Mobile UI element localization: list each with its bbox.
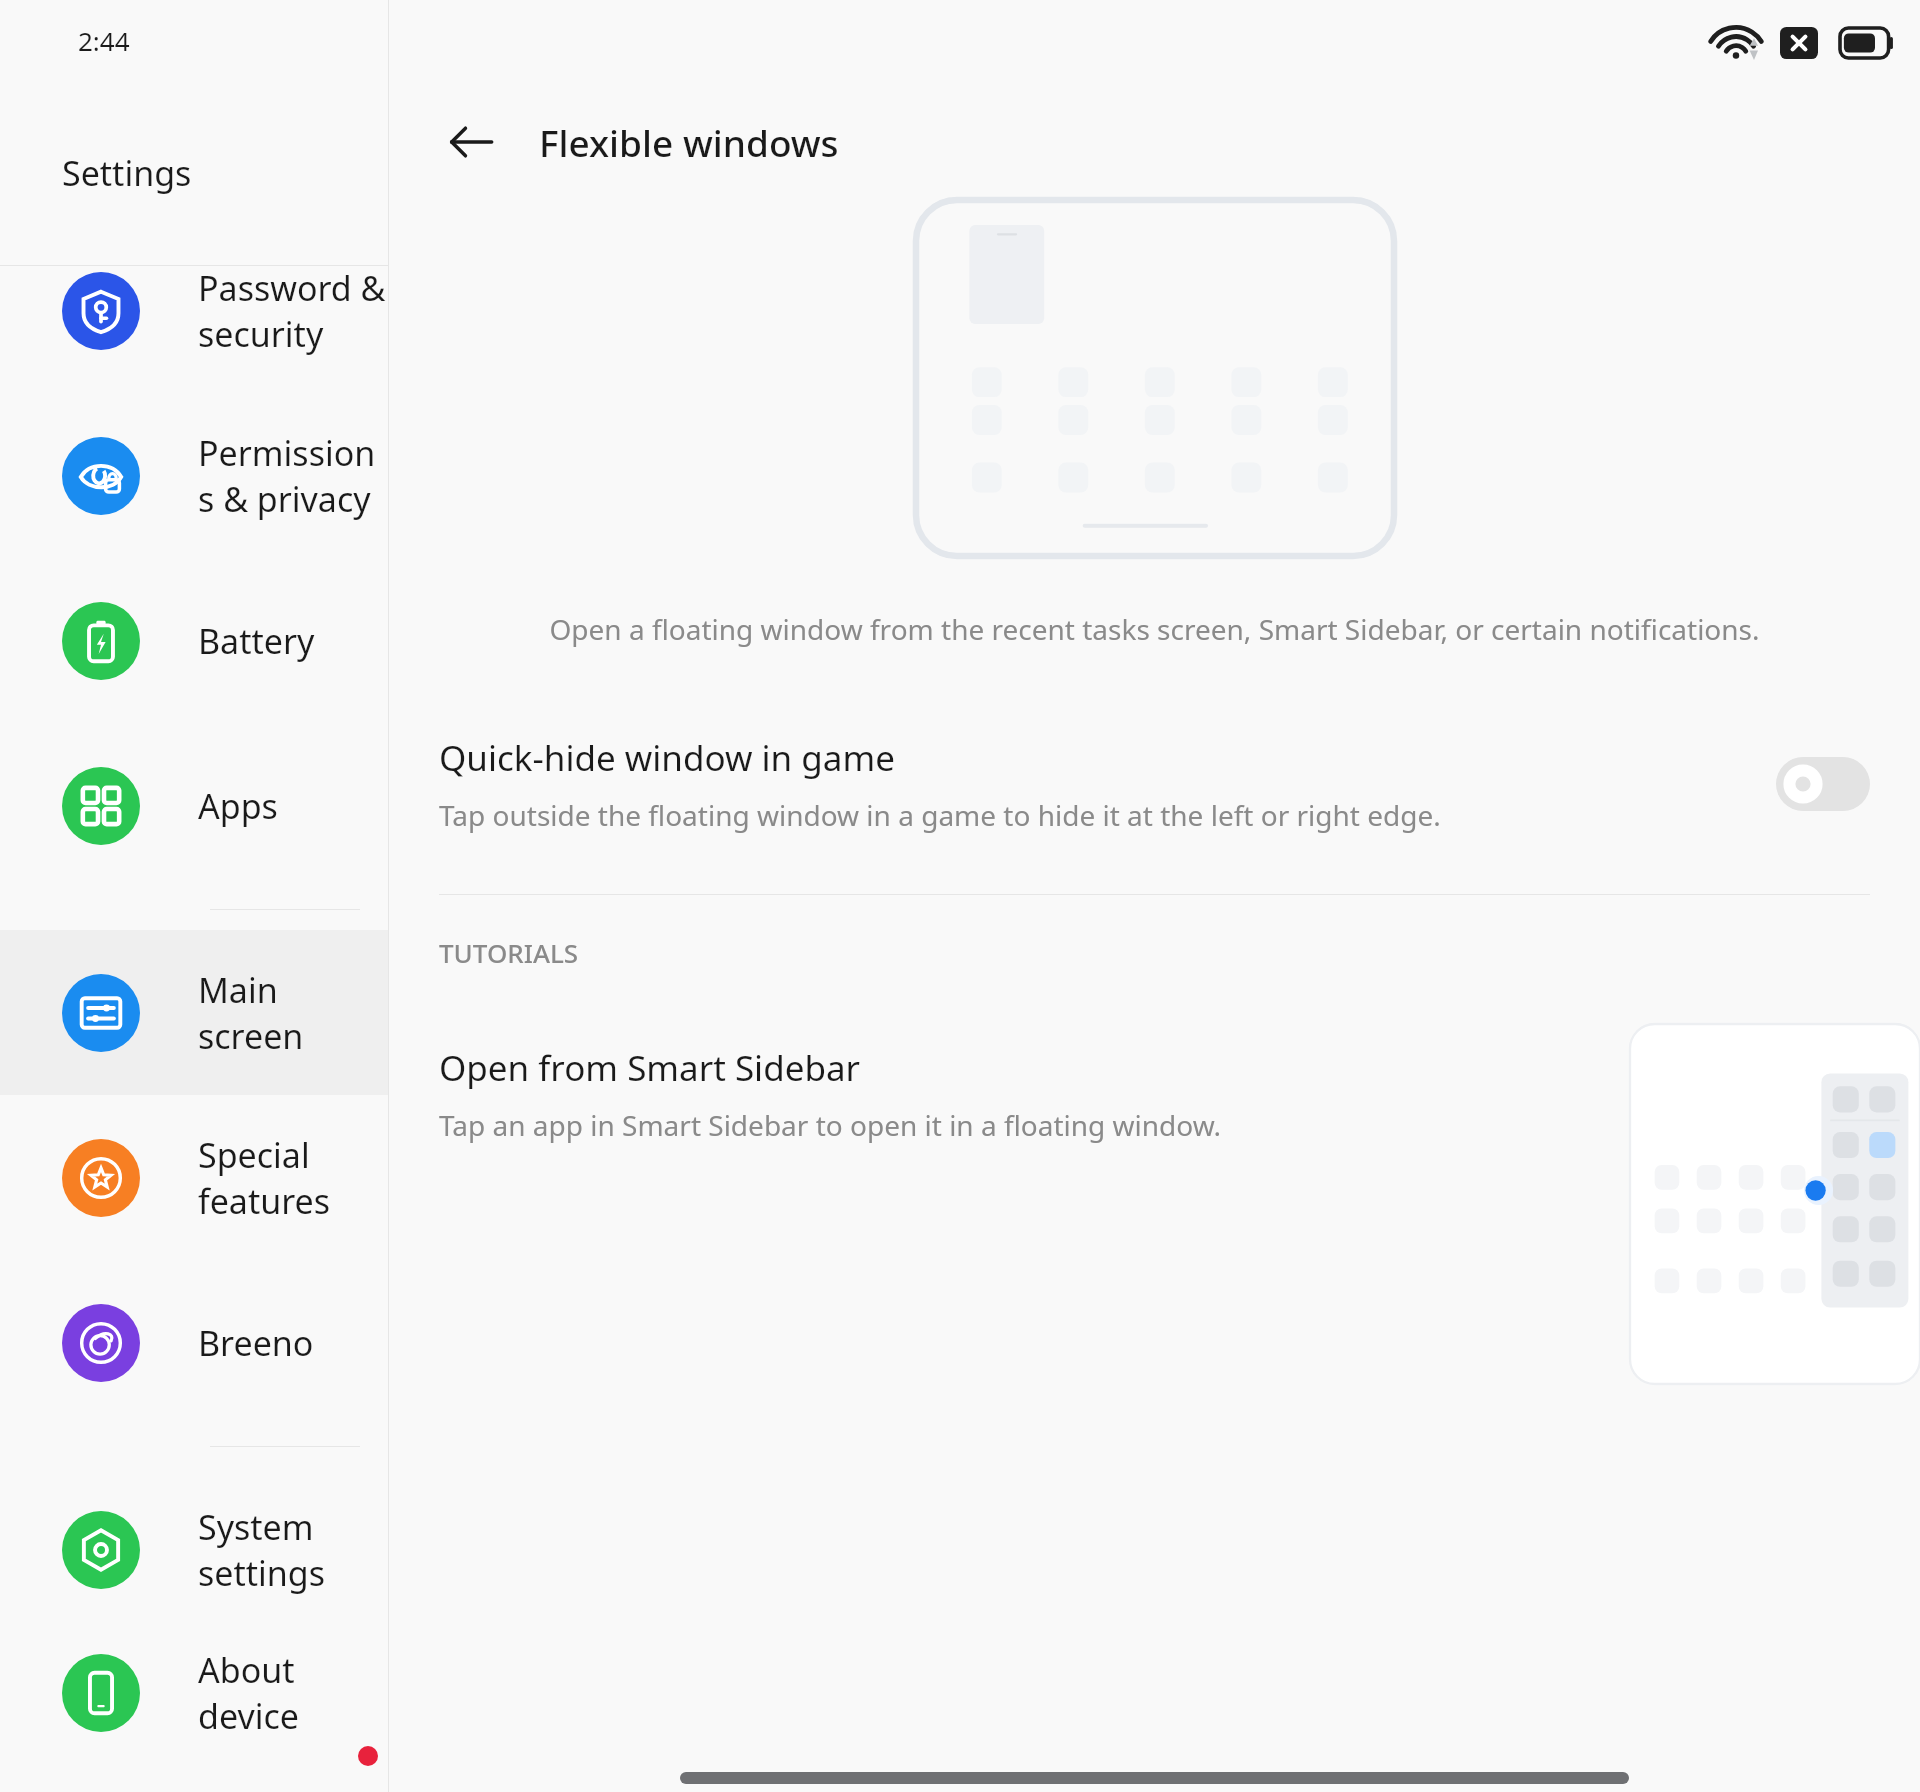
staticText: System settings (198, 1504, 388, 1596)
staticText: TUTORIALS (439, 935, 579, 970)
button[interactable]: Apps (0, 723, 388, 888)
button[interactable]: Quick-hide window in game toggle (1776, 757, 1870, 811)
staticText: Open a floating window from the recent t… (443, 610, 1866, 648)
staticText: About device (198, 1647, 388, 1739)
staticText: Flexible windows (539, 117, 839, 167)
button[interactable]: Password & security (0, 228, 388, 393)
staticText: Tap an app in Smart Sidebar to open it i… (439, 1106, 1222, 1144)
button[interactable]: Open from Smart Sidebar (389, 1024, 1920, 1324)
button[interactable]: Permissions & privacy (0, 393, 388, 558)
staticText: Main screen (198, 967, 388, 1059)
staticText: Special features (198, 1132, 388, 1224)
staticText: Open from Smart Sidebar (439, 1044, 861, 1092)
staticText: Password & security (198, 265, 388, 357)
button[interactable]: Special features (0, 1095, 388, 1260)
staticText: Apps (198, 783, 278, 829)
staticText: 2:44 (78, 23, 130, 58)
staticText: Quick-hide window in game (439, 734, 895, 782)
button[interactable]: Battery (0, 558, 388, 723)
button[interactable]: System settings (0, 1467, 388, 1632)
button[interactable]: Quick-hide window in game (389, 734, 1920, 834)
staticText: Tap outside the floating window in a gam… (439, 796, 1441, 834)
staticText: Settings (62, 150, 192, 196)
button[interactable]: About device (0, 1632, 388, 1754)
staticText: Battery (198, 618, 315, 664)
staticText: Permissions & privacy (198, 430, 388, 522)
button[interactable]: Back (433, 104, 509, 180)
button[interactable]: Main screen (0, 930, 388, 1095)
button[interactable]: Breeno (0, 1260, 388, 1425)
staticText: Breeno (198, 1320, 314, 1366)
